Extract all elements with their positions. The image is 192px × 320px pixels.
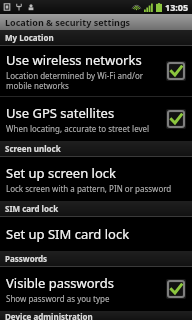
staticText: My Location (5, 32, 54, 43)
staticText: Location determined by Wi-Fi and/or mobi… (6, 70, 160, 91)
button[interactable]: Toggle (166, 279, 186, 299)
button[interactable]: Use wireless networks (0, 46, 192, 96)
staticText: Set up SIM card lock (6, 225, 130, 243)
button[interactable]: Set up screen lock (0, 157, 192, 201)
button[interactable]: Toggle (166, 109, 186, 129)
button[interactable]: Toggle (166, 61, 186, 81)
staticText: 13:05 (165, 1, 189, 13)
staticText: When locating, accurate to street level (6, 123, 150, 134)
staticText: Show password as you type (6, 293, 110, 304)
staticText: Location & security settings (5, 16, 131, 28)
staticText: Lock screen with a pattern, PIN or passw… (6, 183, 172, 194)
staticText: SIM card lock (5, 203, 59, 214)
button[interactable]: Set up SIM card lock (0, 217, 192, 251)
button[interactable]: Use GPS satellites (0, 97, 192, 141)
staticText: Screen unlock (5, 143, 61, 154)
staticText: Visible passwords (6, 274, 114, 292)
staticText: Device administration (5, 311, 93, 320)
staticText: Use GPS satellites (6, 104, 115, 122)
staticText: Use wireless networks (6, 51, 142, 69)
button[interactable]: Visible passwords (0, 267, 192, 311)
staticText: Passwords (5, 253, 48, 264)
staticText: Set up screen lock (6, 164, 117, 182)
